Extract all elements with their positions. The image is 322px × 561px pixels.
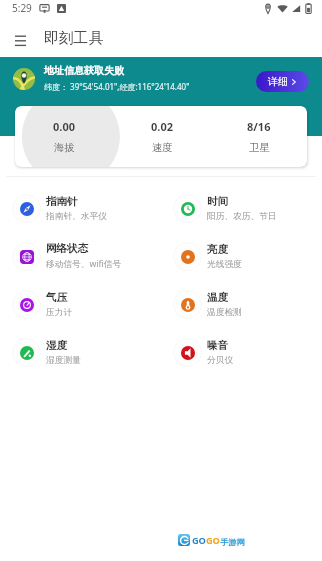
staticText: 速度 [152,141,173,154]
staticText: 温度 [207,291,228,304]
staticText: 光线强度 [207,259,242,270]
button[interactable]: 噪音 [173,328,322,376]
staticText: 指南针 [46,195,78,208]
button[interactable]: 亮度 [173,232,322,280]
staticText: 海拔 [54,141,75,154]
button[interactable]: 0.02 [113,106,210,167]
button[interactable]: 0.00 [15,106,113,167]
staticText: 温度检测 [207,307,242,318]
staticText: 阳历、农历、节日 [207,211,277,222]
staticText: 网络状态 [46,242,88,255]
staticText: 详细 [268,75,288,88]
button[interactable]: 8/16 [210,106,307,167]
staticText: 8/16 [247,119,271,134]
button[interactable]: 时间 [173,184,322,232]
staticText: GO [206,534,220,547]
staticText: 湿度 [46,339,67,352]
staticText: GO [192,534,206,547]
staticText: 亮度 [207,243,228,256]
staticText: 卫星 [249,141,270,154]
staticText: 湿度测量 [46,355,81,366]
button[interactable]: 温度 [173,280,322,328]
staticText: 地址信息获取失败 [44,64,124,77]
staticText: 0.02 [151,119,173,134]
button[interactable]: 湿度 [12,328,161,376]
staticText: 气压 [46,291,67,304]
button[interactable]: 地址信息获取失败 [13,57,309,106]
staticText: 时间 [207,195,228,208]
button[interactable]: 详细 [256,71,309,92]
staticText: 移动信号、wifi信号 [46,258,122,270]
staticText: 5:29 [12,1,32,15]
staticText: 噪音 [207,339,228,352]
button[interactable]: 网络状态 [12,232,161,280]
button[interactable]: 指南针 [12,184,161,232]
button[interactable]: 气压 [12,280,161,328]
staticText: 分贝仪 [207,355,234,366]
staticText: 即刻工具 [44,29,104,48]
staticText: 指南针、水平仪 [46,211,107,222]
staticText: 纬度： 39°54'54.01",经度:116°24'14.40" [44,81,190,92]
staticText: 压力计 [46,307,73,318]
staticText: 手游网 [220,537,245,547]
button[interactable]: Menu [0,22,40,57]
staticText: 0.00 [53,119,75,134]
